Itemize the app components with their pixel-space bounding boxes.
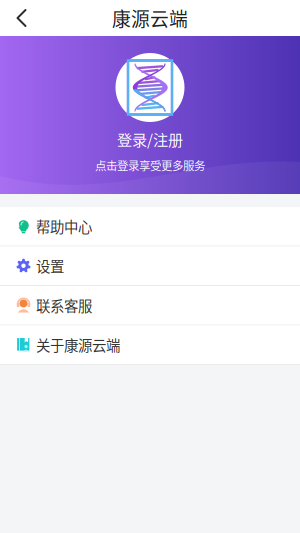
staticText: 登录/注册 xyxy=(117,128,183,150)
button[interactable]: 关于康源云端 xyxy=(0,325,300,365)
button[interactable]: 联系客服 xyxy=(0,286,300,325)
button[interactable]: Back xyxy=(0,0,43,36)
staticText: 点击登录享受更多服务 xyxy=(95,157,205,174)
staticText: 帮助中心 xyxy=(36,216,92,237)
staticText: 联系客服 xyxy=(36,295,92,316)
button[interactable]: 帮助中心 xyxy=(0,207,300,246)
button[interactable]: 设置 xyxy=(0,246,300,286)
staticText: 设置 xyxy=(36,255,64,276)
staticText: 康源云端 xyxy=(112,4,188,32)
staticText: 关于康源云端 xyxy=(36,334,120,355)
